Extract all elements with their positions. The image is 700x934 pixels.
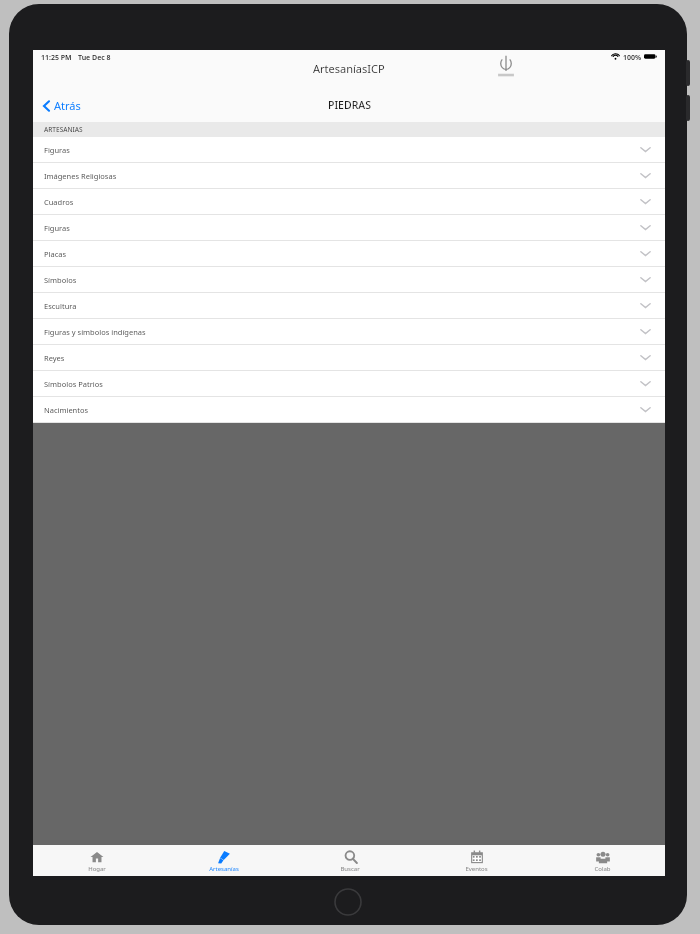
button[interactable]: Figuras bbox=[33, 215, 665, 241]
button[interactable]: Atrás bbox=[39, 94, 84, 117]
staticText: Escultura bbox=[44, 301, 77, 311]
staticText: Eventos bbox=[465, 865, 488, 873]
staticText: 11:25 PM bbox=[41, 53, 72, 63]
button[interactable]: Placas bbox=[33, 241, 665, 267]
button[interactable]: Figuras y símbolos indígenas bbox=[33, 319, 665, 345]
button[interactable]: Escultura bbox=[33, 293, 665, 319]
button[interactable]: Cuadros bbox=[33, 189, 665, 215]
staticText: Hogar bbox=[88, 865, 106, 873]
button[interactable]: Institute logo bbox=[495, 55, 517, 81]
button[interactable]: Artesanías bbox=[160, 845, 287, 876]
button[interactable]: Home bbox=[334, 888, 362, 916]
button[interactable]: Hogar bbox=[33, 845, 160, 876]
staticText: Placas bbox=[44, 249, 67, 259]
staticText: Símbolos bbox=[44, 275, 77, 285]
button[interactable]: Reyes bbox=[33, 345, 665, 371]
staticText: ArtesaníasICP bbox=[313, 61, 385, 76]
button[interactable]: Símbolos bbox=[33, 267, 665, 293]
staticText: Artesanías bbox=[209, 865, 239, 873]
button[interactable]: Nacimientos bbox=[33, 397, 665, 423]
staticText: Figuras bbox=[44, 145, 70, 155]
button[interactable]: Figuras bbox=[33, 137, 665, 163]
staticText: Tue Dec 8 bbox=[78, 53, 111, 63]
staticText: Figuras y símbolos indígenas bbox=[44, 327, 146, 337]
staticText: ARTESANIAS bbox=[44, 125, 83, 134]
staticText: Reyes bbox=[44, 353, 65, 363]
staticText: Símbolos Patrios bbox=[44, 379, 103, 389]
button[interactable]: Imágenes Religiosas bbox=[33, 163, 665, 189]
button[interactable]: Buscar bbox=[287, 845, 413, 876]
button[interactable]: Símbolos Patrios bbox=[33, 371, 665, 397]
staticText: Imágenes Religiosas bbox=[44, 171, 117, 181]
staticText: 100% bbox=[623, 53, 642, 63]
staticText: Buscar bbox=[340, 865, 360, 873]
staticText: Cuadros bbox=[44, 197, 74, 207]
staticText: Nacimientos bbox=[44, 405, 89, 415]
button[interactable]: Colab bbox=[539, 845, 665, 876]
staticText: Atrás bbox=[54, 98, 81, 113]
staticText: Colab bbox=[594, 865, 611, 873]
staticText: PIEDRAS bbox=[328, 98, 371, 112]
button[interactable]: Eventos bbox=[413, 845, 539, 876]
staticText: Figuras bbox=[44, 223, 70, 233]
